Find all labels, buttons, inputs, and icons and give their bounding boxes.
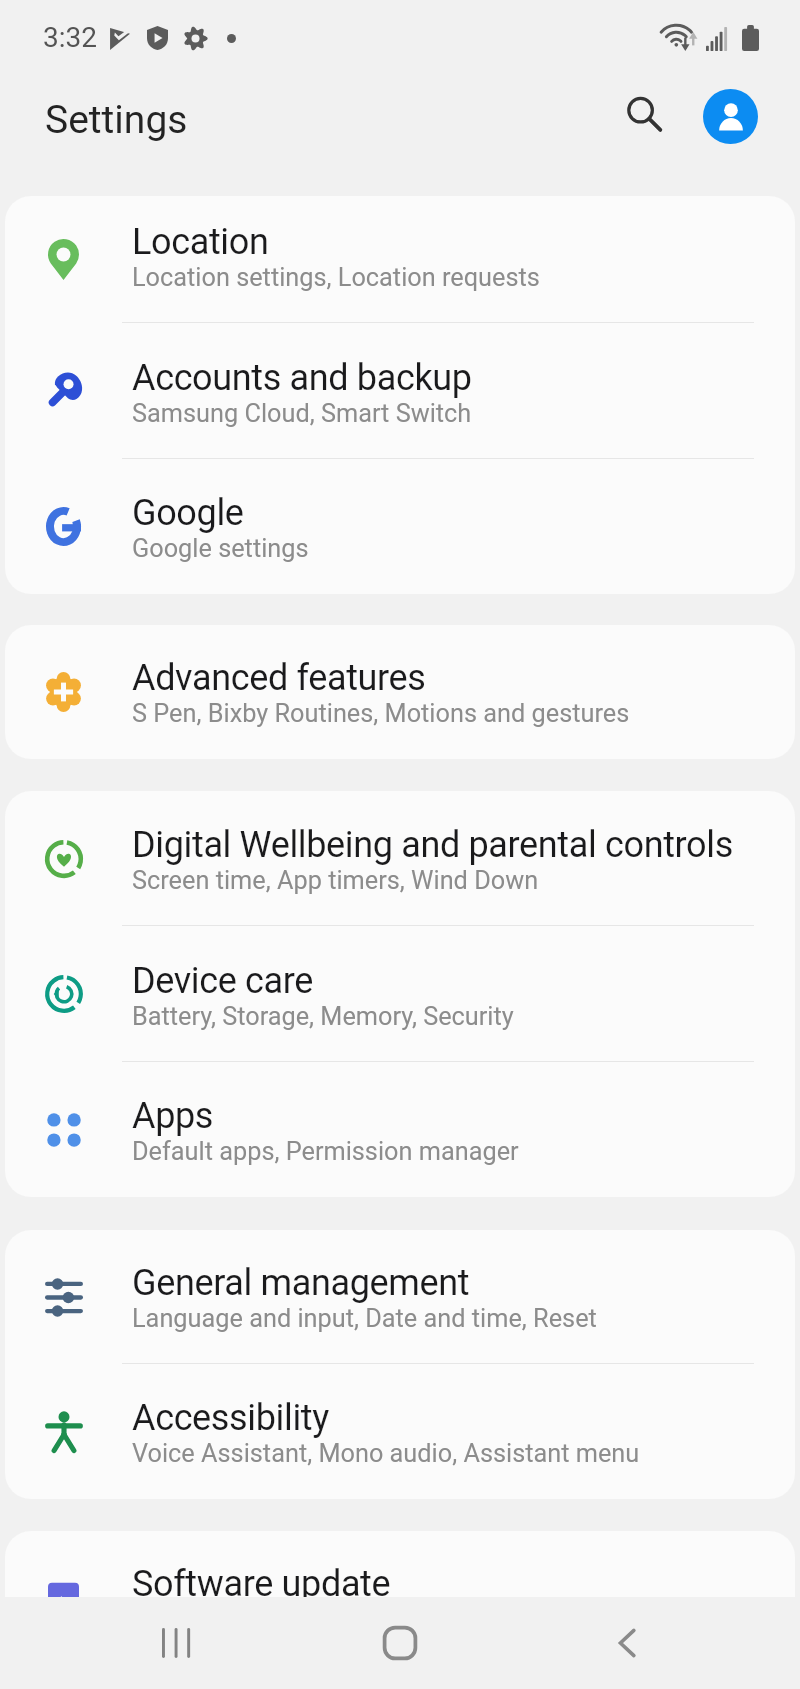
staticText: Software update bbox=[132, 1563, 391, 1605]
button[interactable]: Home bbox=[365, 1608, 435, 1678]
button[interactable]: Accessibility bbox=[5, 1364, 795, 1499]
button[interactable]: Advanced features bbox=[5, 625, 795, 759]
staticText: Location bbox=[132, 221, 269, 263]
button[interactable]: Google bbox=[5, 459, 795, 594]
button[interactable]: Digital Wellbeing and parental controls bbox=[5, 791, 795, 926]
button[interactable]: Location bbox=[5, 196, 795, 323]
staticText: Advanced features bbox=[132, 657, 426, 699]
staticText: Voice Assistant, Mono audio, Assistant m… bbox=[132, 1439, 640, 1469]
staticText: Download and install bbox=[132, 1605, 367, 1635]
staticText: General management bbox=[132, 1262, 470, 1304]
staticText: Language and input, Date and time, Reset bbox=[132, 1304, 597, 1334]
button[interactable]: Accounts and backup bbox=[5, 323, 795, 459]
staticText: Location settings, Location requests bbox=[132, 263, 540, 293]
staticText: Screen time, App timers, Wind Down bbox=[132, 866, 539, 896]
staticText: Samsung Cloud, Smart Switch bbox=[132, 399, 472, 429]
staticText: 3:32 bbox=[43, 21, 97, 54]
button[interactable]: Device care bbox=[5, 926, 795, 1062]
staticText: Digital Wellbeing and parental controls bbox=[132, 824, 733, 866]
button[interactable]: General management bbox=[5, 1230, 795, 1364]
button[interactable]: Apps bbox=[5, 1062, 795, 1197]
staticText: Apps bbox=[132, 1095, 214, 1137]
staticText: S Pen, Bixby Routines, Motions and gestu… bbox=[132, 699, 630, 729]
staticText: Battery, Storage, Memory, Security bbox=[132, 1002, 514, 1032]
button[interactable]: Software update bbox=[5, 1531, 795, 1665]
staticText: Google settings bbox=[132, 534, 309, 564]
staticText: Settings bbox=[45, 97, 188, 143]
button[interactable]: Back bbox=[593, 1608, 663, 1678]
staticText: Google bbox=[132, 492, 244, 534]
staticText: Device care bbox=[132, 960, 314, 1002]
staticText: Accessibility bbox=[132, 1397, 329, 1439]
button[interactable]: Account bbox=[703, 89, 758, 144]
staticText: Default apps, Permission manager bbox=[132, 1137, 519, 1167]
staticText: Accounts and backup bbox=[132, 357, 472, 399]
button[interactable]: Search bbox=[609, 79, 679, 149]
button[interactable]: Recents bbox=[141, 1608, 211, 1678]
